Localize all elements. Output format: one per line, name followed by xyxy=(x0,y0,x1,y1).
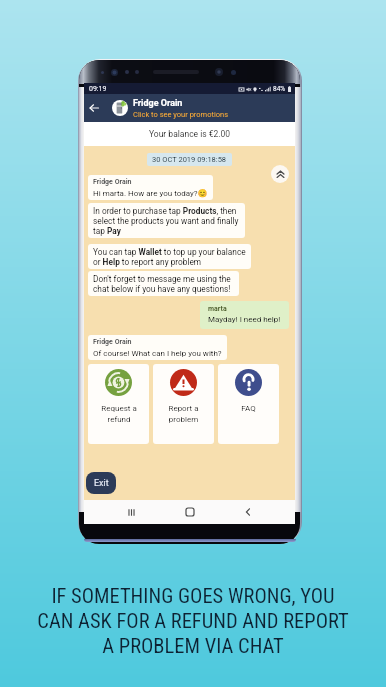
button[interactable]: Back xyxy=(85,94,103,122)
button[interactable]: Don't forget to message me using the cha… xyxy=(88,271,239,296)
button[interactable]: marta xyxy=(200,301,289,329)
staticText: CAN ASK FOR A REFUND AND REPORT xyxy=(37,609,349,633)
button[interactable]: Exit xyxy=(86,472,116,494)
button[interactable]: Request a refund xyxy=(88,364,149,444)
staticText: Don't forget to message me using the cha… xyxy=(93,274,234,294)
staticText: Exit xyxy=(94,478,109,489)
button[interactable]: Back xyxy=(236,500,260,524)
button[interactable]: FAQ xyxy=(218,364,279,444)
staticText: FAQ xyxy=(241,404,256,413)
staticText: Click to see your promotions xyxy=(133,110,229,119)
button[interactable]: Back xyxy=(84,94,295,122)
button[interactable]: You can tap Wallet to top up your balanc… xyxy=(88,244,251,269)
staticText: Report a problem xyxy=(168,404,199,424)
button[interactable]: Fridge Orain xyxy=(88,335,227,360)
staticText: Request a refund xyxy=(101,404,137,424)
staticText: Hi marta. How are you today?😊 xyxy=(93,189,208,198)
staticText: 30 OCT 2019 09:18:58 xyxy=(152,155,227,164)
staticText: marta xyxy=(208,305,227,313)
staticText: You can tap Wallet to top up your balanc… xyxy=(93,247,246,267)
staticText: 09:19 xyxy=(89,85,107,93)
button[interactable]: Report a problem xyxy=(153,364,214,444)
button[interactable]: Home xyxy=(178,500,202,524)
staticText: IF SOMETHING GOES WRONG, YOU xyxy=(51,584,335,608)
staticText: Fridge Orain xyxy=(93,178,132,186)
staticText: In order to purchase tap Products, then … xyxy=(93,206,240,236)
button[interactable]: Scroll to top xyxy=(271,165,289,183)
staticText: Fridge Orain xyxy=(133,98,183,109)
staticText: Mayday! I need help! xyxy=(208,315,281,324)
staticText: Of course! What can I help you with? xyxy=(93,349,222,358)
staticText: Fridge Orain xyxy=(93,338,132,346)
staticText: Your balance is €2.00 xyxy=(149,129,231,139)
button[interactable]: In order to purchase tap Products, then … xyxy=(88,203,245,238)
button[interactable]: Recent apps xyxy=(119,500,143,524)
staticText: 84% xyxy=(273,85,286,93)
staticText: A PROBLEM VIA CHAT xyxy=(102,634,284,658)
button[interactable]: Fridge Orain xyxy=(88,175,213,200)
